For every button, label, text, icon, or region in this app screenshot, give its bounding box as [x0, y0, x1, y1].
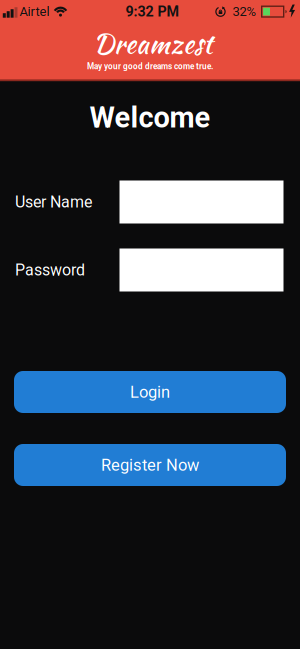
staticText: Dreamzest [93, 24, 213, 63]
staticText: Register Now [101, 455, 199, 475]
staticText: 9:32 PM [125, 3, 179, 20]
button[interactable] [119, 180, 283, 223]
button[interactable] [119, 248, 283, 291]
staticText: Login [130, 382, 170, 402]
button[interactable]: Register Now [14, 444, 286, 486]
staticText: 32% [232, 4, 256, 19]
staticText: Airtel [19, 4, 49, 19]
staticText: May your good dreams come true. [87, 62, 213, 71]
button[interactable]: Login [14, 371, 286, 413]
staticText: Password [15, 261, 85, 279]
staticText: User Name [15, 193, 92, 211]
staticText: Welcome [89, 100, 210, 134]
